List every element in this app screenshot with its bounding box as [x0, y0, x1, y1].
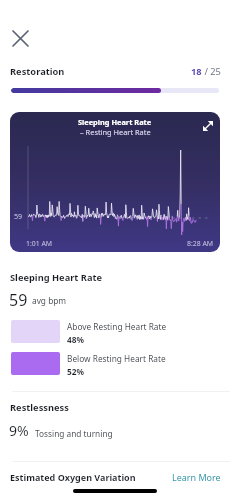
staticText: 1:01 AM [26, 239, 53, 248]
staticText: / 25 [202, 65, 221, 78]
button[interactable]: Learn More [172, 471, 221, 483]
staticText: Estimated Oxygen Variation [10, 471, 136, 483]
staticText: Restoration [10, 65, 65, 78]
staticText: 59 [9, 289, 28, 311]
staticText: 59 [14, 211, 23, 221]
staticText: 52% [67, 366, 84, 377]
button[interactable]: Estimated Oxygen Variation [10, 471, 136, 483]
staticText: 48% [67, 334, 84, 345]
button[interactable]: Sleeping Heart Rate [10, 112, 220, 252]
staticText: 18 [191, 65, 202, 78]
staticText: Above Resting Heart Rate [67, 321, 167, 332]
staticText: Tossing and turning [35, 428, 113, 439]
staticText: 9% [9, 421, 29, 440]
staticText: Below Resting Heart Rate [67, 353, 166, 364]
staticText: Sleeping Heart Rate [78, 117, 152, 127]
staticText: Sleeping Heart Rate [10, 271, 103, 284]
staticText: Learn More [172, 471, 221, 483]
staticText: avg bpm [32, 295, 67, 306]
staticText: 8:28 AM [187, 239, 214, 248]
staticText: Restlessness [10, 401, 69, 414]
staticText: – Resting Heart Rate [80, 127, 151, 137]
button[interactable]: Expand chart [198, 116, 218, 136]
button[interactable]: Close [5, 23, 36, 54]
